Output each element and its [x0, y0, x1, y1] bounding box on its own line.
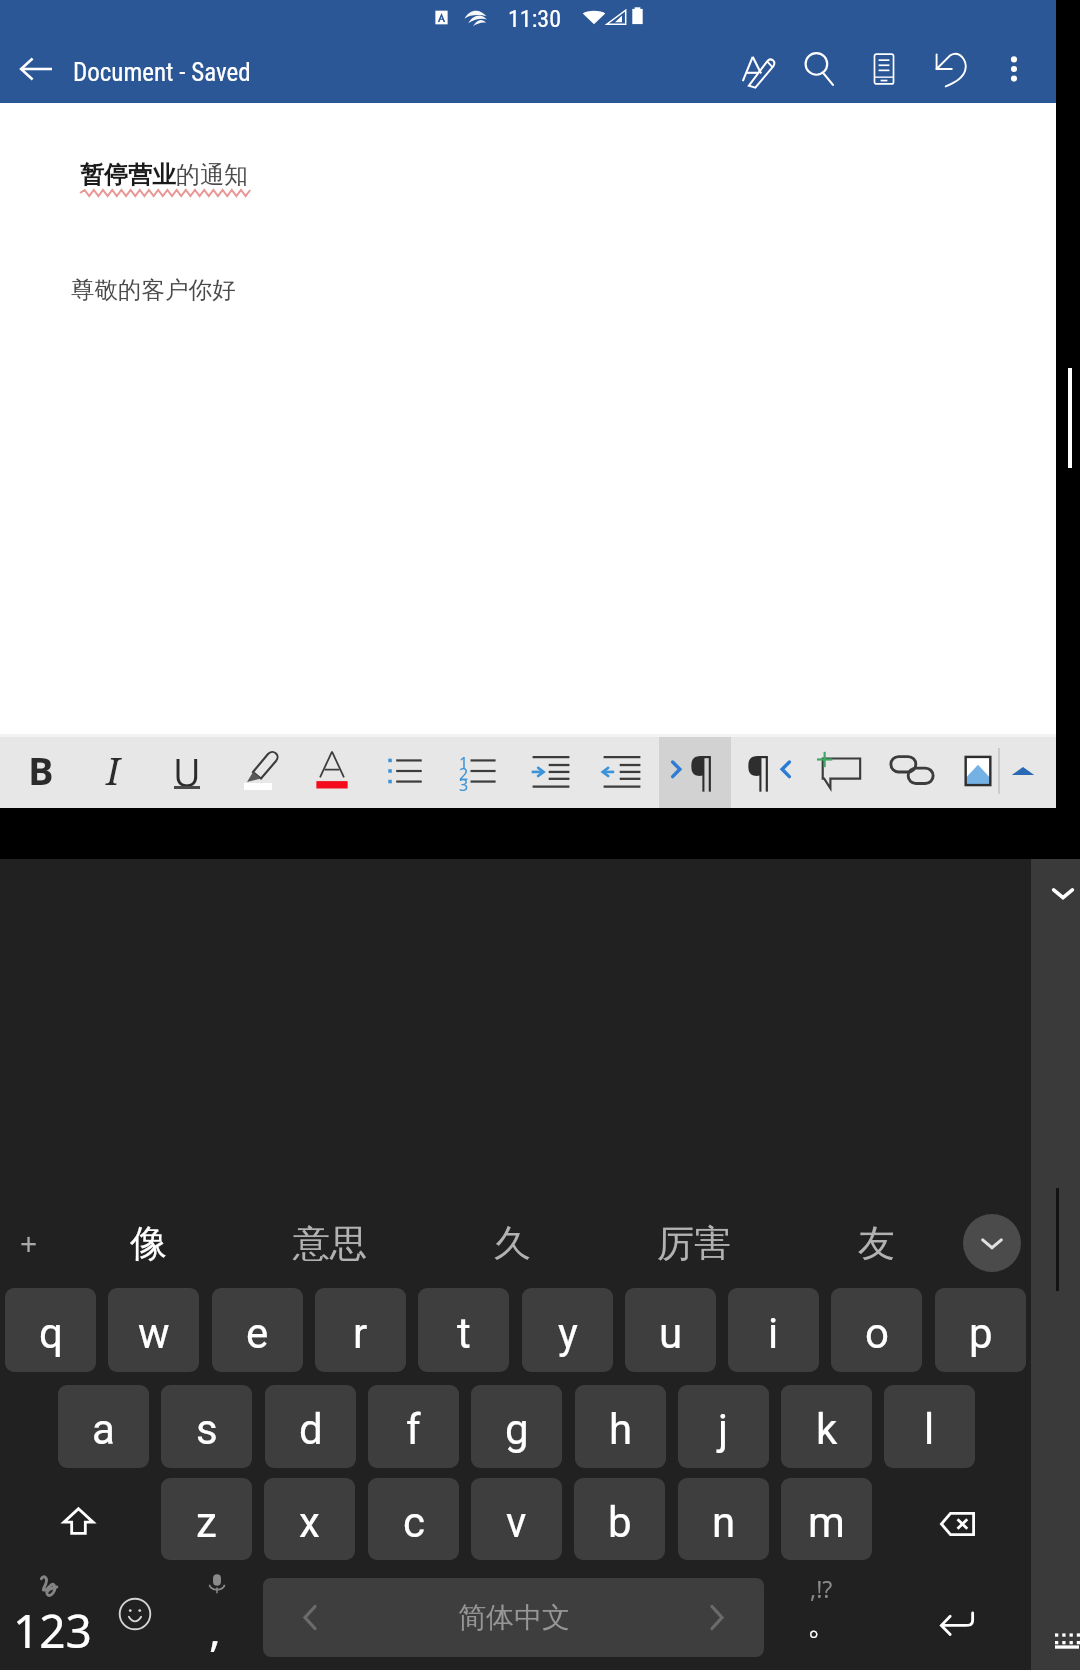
button[interactable]: s: [161, 1385, 252, 1468]
staticText: 。: [807, 1603, 839, 1643]
staticText: I: [106, 744, 120, 796]
button[interactable]: Left to right paragraph: [731, 734, 803, 808]
button[interactable]: Numbered list: [442, 734, 514, 808]
staticText: f: [406, 1405, 421, 1454]
staticText: p: [969, 1309, 993, 1358]
button[interactable]: 简体中文: [263, 1578, 764, 1657]
button[interactable]: Hide suggestions: [963, 1214, 1021, 1272]
button[interactable]: Read aloud: [853, 35, 915, 103]
staticText: g: [505, 1405, 529, 1454]
button[interactable]: Emoji: [102, 1573, 166, 1667]
staticText: h: [609, 1405, 633, 1454]
button[interactable]: 友: [788, 1205, 964, 1281]
button[interactable]: x: [264, 1478, 355, 1560]
button[interactable]: z: [161, 1478, 252, 1560]
button[interactable]: Numbers and symbols: [0, 1573, 98, 1667]
button[interactable]: c: [368, 1478, 459, 1560]
button[interactable]: g: [471, 1385, 562, 1468]
button[interactable]: 意思: [242, 1205, 418, 1281]
button[interactable]: l: [884, 1385, 975, 1468]
button[interactable]: v: [471, 1478, 562, 1560]
staticText: B: [28, 744, 54, 796]
button[interactable]: q: [5, 1288, 96, 1372]
button[interactable]: a: [58, 1385, 149, 1468]
staticText: ,!?: [810, 1573, 833, 1604]
staticText: d: [299, 1405, 323, 1454]
button[interactable]: Back: [2, 35, 70, 103]
button[interactable]: i: [728, 1288, 819, 1372]
button[interactable]: Backspace: [886, 1478, 1026, 1560]
staticText: 暂停营业: [80, 160, 176, 190]
staticText: ,: [209, 1599, 221, 1659]
button[interactable]: Highlight: [224, 734, 296, 808]
button[interactable]: Right to left paragraph: [659, 734, 731, 808]
button[interactable]: Shift: [10, 1478, 146, 1560]
button[interactable]: More suggestions: [0, 1205, 58, 1281]
staticText: a: [92, 1405, 115, 1454]
staticText: 意思: [293, 1220, 367, 1267]
button[interactable]: Collapse keyboard: [1044, 866, 1080, 914]
button[interactable]: y: [522, 1288, 613, 1372]
button[interactable]: Italic: [77, 734, 149, 808]
button[interactable]: m: [781, 1478, 872, 1560]
button[interactable]: Underline: [151, 734, 223, 808]
button[interactable]: Insert link: [876, 734, 948, 808]
staticText: b: [608, 1498, 632, 1547]
button[interactable]: Increase indent: [515, 734, 587, 808]
button[interactable]: p: [935, 1288, 1026, 1372]
button[interactable]: Show more: [995, 734, 1051, 808]
button[interactable]: Punctuation: [780, 1573, 876, 1667]
button[interactable]: e: [212, 1288, 303, 1372]
staticText: x: [299, 1498, 320, 1547]
staticText: e: [246, 1309, 269, 1358]
staticText: Document - Saved: [73, 58, 251, 87]
staticText: k: [816, 1405, 838, 1454]
staticText: 123: [13, 1599, 92, 1662]
button[interactable]: w: [108, 1288, 199, 1372]
staticText: w: [138, 1309, 170, 1358]
staticText: i: [768, 1309, 779, 1358]
staticText: 久: [494, 1220, 531, 1267]
button[interactable]: Search: [789, 35, 851, 103]
button[interactable]: 厉害: [606, 1205, 782, 1281]
button[interactable]: Insert picture: [942, 734, 1014, 808]
button[interactable]: k: [781, 1385, 872, 1468]
button[interactable]: Decrease indent: [586, 734, 658, 808]
staticText: 2: [459, 763, 469, 785]
staticText: 1: [459, 752, 469, 774]
button[interactable]: Bullet list: [369, 734, 441, 808]
button[interactable]: Enter: [886, 1573, 1026, 1667]
button[interactable]: Bold: [5, 734, 77, 808]
button[interactable]: Draw: [727, 35, 789, 103]
staticText: u: [659, 1309, 683, 1358]
button[interactable]: j: [678, 1385, 769, 1468]
button[interactable]: d: [265, 1385, 356, 1468]
staticText: 11:30: [508, 5, 561, 33]
button[interactable]: Font color: [296, 734, 368, 808]
button[interactable]: r: [315, 1288, 406, 1372]
button[interactable]: Voice input and comma: [180, 1573, 256, 1667]
staticText: U: [173, 746, 201, 792]
button[interactable]: Undo: [917, 35, 979, 103]
staticText: r: [353, 1309, 368, 1358]
button[interactable]: New comment: [804, 734, 876, 808]
staticText: 尊敬的客户你好: [71, 275, 236, 305]
button[interactable]: 像: [60, 1205, 236, 1281]
button[interactable]: 久: [424, 1205, 600, 1281]
button[interactable]: t: [418, 1288, 509, 1372]
staticText: ¶: [689, 743, 716, 797]
button[interactable]: o: [831, 1288, 922, 1372]
staticText: o: [865, 1309, 889, 1358]
button[interactable]: f: [368, 1385, 459, 1468]
button[interactable]: h: [575, 1385, 666, 1468]
button[interactable]: More options: [983, 35, 1045, 103]
staticText: c: [403, 1498, 425, 1547]
button[interactable]: b: [574, 1478, 665, 1560]
button[interactable]: u: [625, 1288, 716, 1372]
button[interactable]: n: [678, 1478, 769, 1560]
staticText: 3: [459, 774, 469, 796]
staticText: t: [457, 1309, 471, 1358]
staticText: z: [196, 1498, 217, 1547]
staticText: l: [924, 1405, 935, 1454]
staticText: n: [712, 1498, 736, 1547]
